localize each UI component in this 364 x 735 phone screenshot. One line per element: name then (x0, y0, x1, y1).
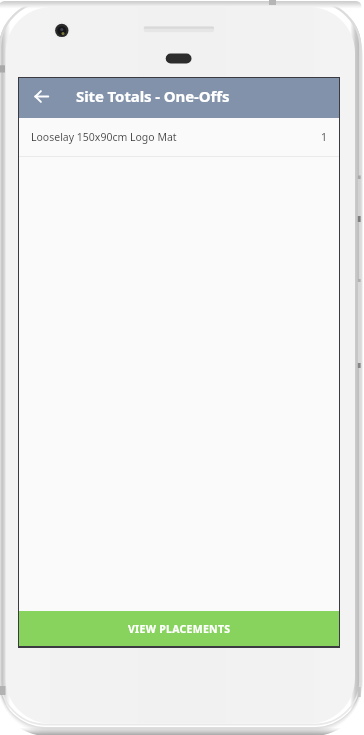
button[interactable]: Back (19, 78, 59, 118)
button[interactable]: Looselay 150x90cm Logo Mat (19, 118, 339, 156)
staticText: 1 (321, 130, 328, 144)
staticText: Site Totals - One-Offs (76, 86, 230, 106)
button[interactable]: VIEW PLACEMENTS (19, 611, 339, 646)
staticText: Looselay 150x90cm Logo Mat (31, 130, 177, 144)
staticText: VIEW PLACEMENTS (128, 622, 231, 636)
